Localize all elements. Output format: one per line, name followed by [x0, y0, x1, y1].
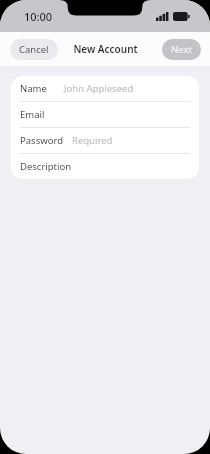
staticText: Cancel — [19, 43, 49, 56]
staticText: New Account — [73, 42, 138, 56]
button[interactable]: Name — [11, 76, 199, 102]
button[interactable]: Next — [162, 39, 201, 60]
staticText: John Appleseed — [64, 82, 134, 95]
staticText: Description — [20, 160, 72, 173]
button[interactable]: Email — [11, 102, 199, 128]
staticText: Password — [20, 134, 63, 147]
staticText: Next — [171, 43, 192, 56]
staticText: Email — [20, 108, 45, 121]
staticText: Name — [20, 82, 47, 95]
button[interactable]: Cancel — [10, 39, 58, 60]
staticText: 10:00 — [24, 9, 53, 24]
button[interactable]: Description — [11, 154, 199, 179]
staticText: Required — [72, 134, 113, 147]
button[interactable]: Password — [11, 128, 199, 154]
